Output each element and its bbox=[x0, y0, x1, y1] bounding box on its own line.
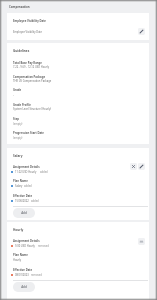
staticText: Compensation bbox=[9, 5, 30, 9]
staticText: Compensation Package bbox=[13, 75, 46, 79]
staticText: Guidelines bbox=[13, 49, 30, 53]
staticText: Hourly bbox=[13, 258, 22, 262]
staticText: Step bbox=[13, 117, 20, 121]
staticText: 11.02 USD Hourly bbox=[15, 170, 37, 174]
staticText: Plan Name bbox=[13, 253, 28, 257]
staticText: Salary bbox=[15, 184, 23, 188]
staticText: Plan Name bbox=[13, 179, 28, 183]
staticText: added bbox=[24, 184, 32, 188]
staticText: (empty) bbox=[13, 122, 23, 126]
staticText: 15/06/2022 bbox=[15, 199, 29, 203]
staticText: Progression Start Date bbox=[13, 131, 44, 135]
staticText: added bbox=[40, 170, 48, 174]
staticText: Effective Date bbox=[13, 268, 33, 272]
staticText: removed bbox=[31, 273, 42, 277]
staticText: 9.00 USD Hourly bbox=[15, 244, 35, 248]
staticText: Add bbox=[21, 285, 27, 289]
staticText: Assignment Details bbox=[13, 239, 40, 243]
staticText: added bbox=[31, 199, 39, 203]
staticText: removed bbox=[38, 244, 49, 248]
staticText: Total Base Pay Range bbox=[13, 61, 42, 65]
staticText: System Level Structure (Hourly) bbox=[13, 107, 52, 111]
staticText: Employee Visibility Date bbox=[13, 30, 42, 34]
staticText: THR US Compensation Package bbox=[13, 79, 52, 83]
staticText: Salary bbox=[13, 154, 23, 158]
button[interactable]: Restore hourly bbox=[138, 238, 145, 245]
staticText: 08/01/2023 bbox=[15, 273, 29, 277]
staticText: (empty) bbox=[13, 136, 23, 140]
staticText: - bbox=[13, 93, 14, 97]
staticText: Employee Visibility Date bbox=[13, 19, 46, 23]
staticText: Add bbox=[21, 211, 27, 215]
button[interactable]: Edit employee visibility date bbox=[138, 28, 145, 35]
button[interactable]: Delete salary bbox=[130, 163, 137, 170]
staticText: 7.22 - 9.69 - 12.12 USD Hourly bbox=[13, 65, 50, 69]
button[interactable]: Add bbox=[13, 208, 35, 218]
button[interactable]: Add bbox=[13, 282, 35, 292]
button[interactable]: Edit salary bbox=[138, 163, 145, 170]
staticText: Grade bbox=[13, 88, 22, 92]
staticText: Hourly bbox=[13, 228, 24, 232]
staticText: Grade Profile bbox=[13, 103, 31, 107]
staticText: Assignment Details bbox=[13, 165, 40, 169]
staticText: Effective Date bbox=[13, 194, 33, 198]
